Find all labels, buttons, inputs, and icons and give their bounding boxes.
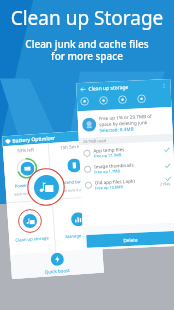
staticText: Image thumbnails: [94, 162, 134, 169]
staticText: Manage apps: [65, 232, 92, 240]
staticText: Free up 1.7MB: [94, 168, 120, 174]
staticText: Battery Optimizer: [12, 135, 56, 145]
staticText: Quick boost: [44, 267, 71, 275]
staticText: Clean up storage: [15, 235, 49, 244]
button[interactable]: 53% left: [3, 143, 52, 202]
button[interactable]: Tab 1: [80, 97, 89, 106]
button[interactable]: App temp files: [79, 141, 174, 161]
staticText: Selected: 8.4MB: [99, 126, 134, 133]
button[interactable]: Quick boost: [50, 252, 64, 266]
staticText: Free up 1% or 29.7MB of space by deletin…: [99, 113, 152, 127]
staticText: Delete: [123, 237, 138, 243]
button[interactable]: Delete: [86, 231, 174, 248]
button[interactable]: 15h 5m left: [49, 140, 98, 199]
staticText: Power saving: [14, 182, 42, 190]
staticText: See how it works: [61, 186, 90, 193]
staticText: Clean up Storage: [0, 5, 174, 31]
staticText: 2 files: [160, 181, 171, 186]
staticText: App temp files: [93, 146, 125, 153]
button[interactable]: Old app files (.apk): [80, 173, 174, 193]
staticText: Free up 10.8MB: [95, 184, 123, 190]
staticText: 15h 5m left: [60, 143, 84, 150]
staticText: Save more power: [14, 190, 44, 197]
staticText: Clean up storage: [88, 84, 129, 93]
staticText: 53% left: [17, 146, 34, 153]
staticText: Clean junk and cache files for more spac…: [0, 37, 174, 63]
button[interactable]: Manage apps: [53, 197, 102, 252]
button[interactable]: Tab 4: [137, 94, 146, 103]
button[interactable]: Tab 3: [118, 95, 127, 104]
button[interactable]: Image thumbnails: [80, 157, 174, 177]
button[interactable]: Tab 2: [99, 96, 108, 105]
staticText: 29.7MB used: [83, 138, 107, 144]
button[interactable]: Clean up storage: [7, 200, 55, 255]
staticText: Old app files (.apk): [95, 178, 135, 185]
other: Back: [80, 87, 86, 92]
other: More options: [161, 83, 167, 88]
staticText: Extend battery: [60, 178, 90, 186]
staticText: Free up 17.3MB: [93, 152, 122, 158]
